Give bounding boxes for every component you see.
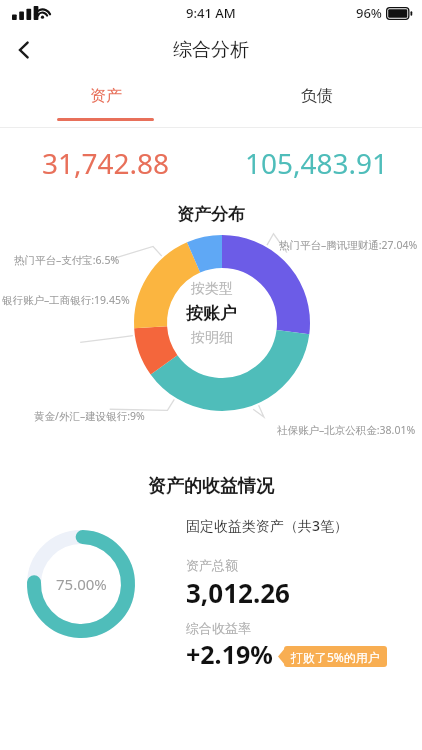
staticText: 按类型 xyxy=(191,280,233,298)
staticText: 105,483.91 xyxy=(245,144,389,182)
staticText: 按账户 xyxy=(186,303,237,324)
staticText: 打败了5%的用户 xyxy=(291,649,380,665)
staticText: 银行账户–工商银行:19.45% xyxy=(2,293,130,307)
staticText: 3,012.26 xyxy=(186,575,290,610)
staticText: 96% xyxy=(356,4,382,22)
staticText: 75.00% xyxy=(56,574,107,594)
staticText: 社保账户–北京公积金:38.01% xyxy=(277,423,416,437)
staticText: 资产 xyxy=(90,86,122,106)
staticText: 综合分析 xyxy=(173,38,249,62)
button[interactable]: 资产 xyxy=(0,74,211,127)
staticText: 9:41 AM xyxy=(186,4,236,22)
staticText: 资产分布 xyxy=(0,204,422,225)
button[interactable]: Back xyxy=(0,26,48,74)
staticText: 负债 xyxy=(301,86,333,106)
staticText: 按明细 xyxy=(191,329,233,347)
staticText: 综合收益率 xyxy=(186,620,251,636)
button[interactable]: 打败了5%的用户 xyxy=(278,646,387,667)
button[interactable]: 负债 xyxy=(211,74,422,127)
staticText: 热门平台–支付宝:6.5% xyxy=(14,253,120,267)
staticText: 固定收益类资产（共3笔） xyxy=(186,516,349,535)
staticText: +2.19% xyxy=(186,637,273,671)
staticText: 资产的收益情况 xyxy=(0,475,422,498)
staticText: 热门平台–腾讯理财通:27.04% xyxy=(279,238,418,252)
staticText: 资产总额 xyxy=(186,557,238,573)
staticText: 黄金/外汇–建设银行:9% xyxy=(34,409,145,423)
staticText: 31,742.88 xyxy=(42,144,170,182)
